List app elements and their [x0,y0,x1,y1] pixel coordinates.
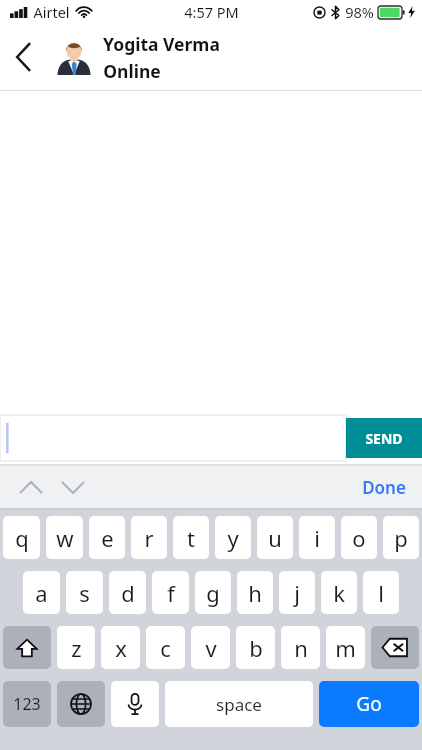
staticText: d [121,578,135,608]
button[interactable]: x [101,626,140,669]
button[interactable]: o [341,516,377,559]
staticText: z [71,633,82,663]
staticText: space [216,693,262,716]
button[interactable]: f [152,571,189,614]
button[interactable]: g [195,571,231,614]
staticText: b [249,633,263,663]
staticText: x [115,633,127,663]
button[interactable]: z [57,626,95,669]
staticText: Done [362,476,406,499]
button[interactable]: a [23,571,60,614]
staticText: 123 [13,693,41,715]
staticText: Online [103,59,161,83]
staticText: 4:57 PM [184,2,239,22]
staticText: u [268,523,282,553]
staticText: j [294,578,300,608]
button[interactable]: p [383,516,419,559]
staticText: t [187,523,195,553]
staticText: o [352,523,366,553]
staticText: l [378,578,384,608]
staticText: p [394,523,408,553]
button[interactable]: b [236,626,275,669]
button[interactable]: space [165,681,313,727]
button[interactable]: k [321,571,357,614]
button[interactable]: Back [0,34,46,80]
button[interactable]: v [191,626,230,669]
staticText: r [144,523,154,553]
button[interactable]: t [173,516,209,559]
staticText: SEND [365,429,403,448]
staticText: f [167,578,175,608]
button[interactable]: Done [354,470,414,505]
staticText: h [248,578,262,608]
button[interactable]: n [281,626,320,669]
button[interactable]: Go [319,681,419,727]
button[interactable]: j [279,571,315,614]
button[interactable]: i [299,516,335,559]
staticText: n [294,633,308,663]
staticText: c [160,633,171,663]
button[interactable]: Next field [52,466,94,508]
staticText: s [79,578,90,608]
staticText: Airtel [33,2,70,22]
button[interactable]: e [89,516,125,559]
staticText: m [335,633,356,663]
button[interactable]: c [146,626,185,669]
button[interactable]: q [3,516,40,559]
button[interactable]: Dictation [111,681,159,727]
staticText: w [56,523,74,553]
button[interactable]: s [66,571,103,614]
button[interactable]: SEND [346,418,422,458]
button[interactable]: r [131,516,167,559]
staticText: q [15,523,29,553]
button[interactable]: y [215,516,251,559]
button[interactable]: h [237,571,273,614]
button[interactable] [0,415,346,461]
button[interactable]: l [363,571,399,614]
button[interactable]: Change keyboard [57,681,105,727]
button[interactable]: Shift [3,626,51,669]
button[interactable]: u [257,516,293,559]
button[interactable]: w [46,516,83,559]
staticText: i [314,523,320,553]
button[interactable]: 123 [3,681,51,727]
staticText: y [227,523,239,553]
staticText: g [206,578,220,608]
staticText: v [205,633,217,663]
staticText: Yogita Verma [103,32,220,56]
staticText: e [101,523,114,553]
button[interactable]: Previous field [10,466,52,508]
staticText: Go [356,691,382,717]
staticText: a [35,578,48,608]
button[interactable]: m [326,626,365,669]
button[interactable]: d [109,571,146,614]
staticText: 98% [345,2,374,22]
staticText: k [333,578,345,608]
button[interactable]: Backspace [371,626,419,669]
